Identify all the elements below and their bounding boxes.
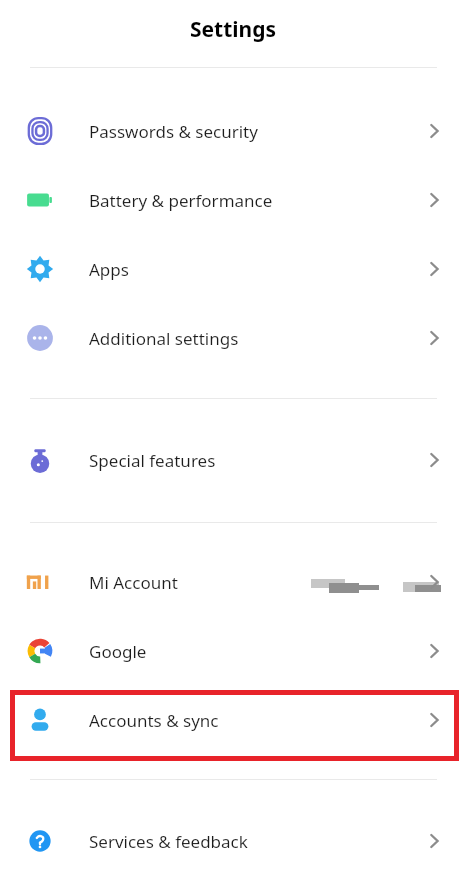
- staticText: Services & feedback: [89, 830, 248, 853]
- staticText: Mi Account: [89, 571, 178, 594]
- button[interactable]: Special features: [0, 427, 467, 493]
- staticText: Apps: [89, 258, 129, 281]
- button[interactable]: Accounts & sync: [0, 687, 467, 753]
- staticText: Settings: [190, 15, 277, 44]
- button[interactable]: Apps: [0, 236, 467, 302]
- button[interactable]: Passwords & security: [0, 98, 467, 164]
- button[interactable]: Services & feedback: [0, 808, 467, 874]
- staticText: Accounts & sync: [89, 709, 219, 732]
- button[interactable]: Additional settings: [0, 305, 467, 371]
- button[interactable]: Battery & performance: [0, 167, 467, 233]
- button[interactable]: Mi Account: [0, 549, 467, 615]
- staticText: Battery & performance: [89, 189, 273, 212]
- staticText: Special features: [89, 449, 216, 472]
- staticText: Passwords & security: [89, 120, 258, 143]
- button[interactable]: Google: [0, 618, 467, 684]
- staticText: Additional settings: [89, 327, 239, 350]
- staticText: Google: [89, 640, 147, 663]
